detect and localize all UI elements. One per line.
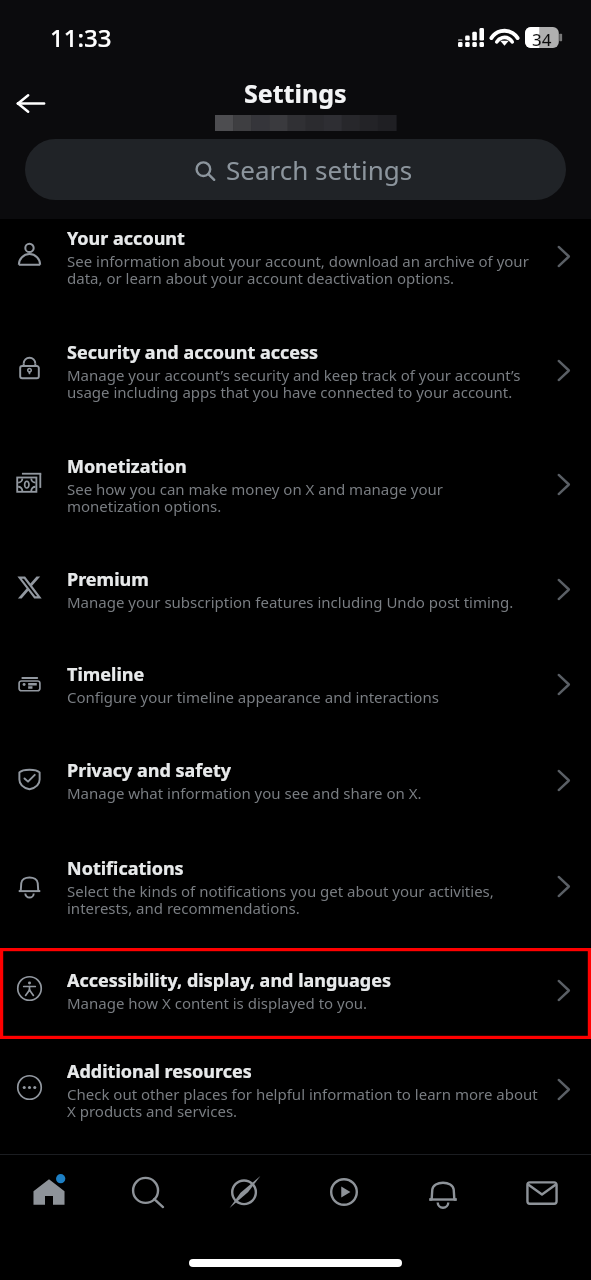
staticText: Accessibility, display, and languages — [67, 968, 391, 993]
button[interactable]: Notifications — [393, 1163, 492, 1221]
staticText: Check out other places for helpful infor… — [67, 1084, 538, 1122]
staticText: Manage your subscription features includ… — [67, 592, 514, 612]
staticText: Privacy and safety — [67, 758, 232, 783]
staticText: Security and account access — [67, 340, 319, 365]
staticText: Manage your account’s security and keep … — [67, 365, 521, 403]
staticText: Settings — [244, 76, 347, 110]
staticText: See how you can make money on X and mana… — [67, 479, 444, 517]
staticText: Select the kinds of notifications you ge… — [67, 881, 494, 919]
staticText: See information about your account, down… — [67, 251, 529, 289]
staticText: Manage how X content is displayed to you… — [67, 993, 368, 1013]
button[interactable]: Your account — [0, 206, 591, 320]
button[interactable]: Notifications — [0, 836, 591, 948]
button[interactable]: Messages — [492, 1163, 591, 1221]
staticText: Timeline — [67, 662, 145, 687]
staticText: 11:33 — [50, 21, 112, 54]
staticText: Your account — [67, 226, 185, 251]
staticText: Manage what information you see and shar… — [67, 783, 422, 803]
button[interactable]: Privacy and safety — [0, 738, 591, 836]
button[interactable]: Search settings — [25, 139, 566, 200]
staticText: Search settings — [226, 152, 413, 187]
button[interactable]: Search — [98, 1163, 196, 1221]
button[interactable]: Video — [294, 1163, 393, 1221]
staticText: Monetization — [67, 454, 187, 479]
button[interactable]: Monetization — [0, 434, 591, 547]
button[interactable]: Accessibility, display, and languages — [0, 948, 591, 1039]
staticText: Notifications — [67, 856, 184, 881]
staticText: 34 — [532, 28, 552, 49]
button[interactable]: Additional resources — [0, 1039, 591, 1152]
button[interactable]: Grok — [196, 1163, 294, 1221]
button[interactable]: Home — [0, 1163, 98, 1221]
staticText: Premium — [67, 567, 149, 592]
button[interactable]: Back — [9, 82, 52, 125]
button[interactable]: Security and account access — [0, 320, 591, 434]
button[interactable]: Timeline — [0, 642, 591, 738]
staticText: Additional resources — [67, 1059, 252, 1084]
staticText: Configure your timeline appearance and i… — [67, 687, 439, 707]
button[interactable]: Premium — [0, 547, 591, 642]
